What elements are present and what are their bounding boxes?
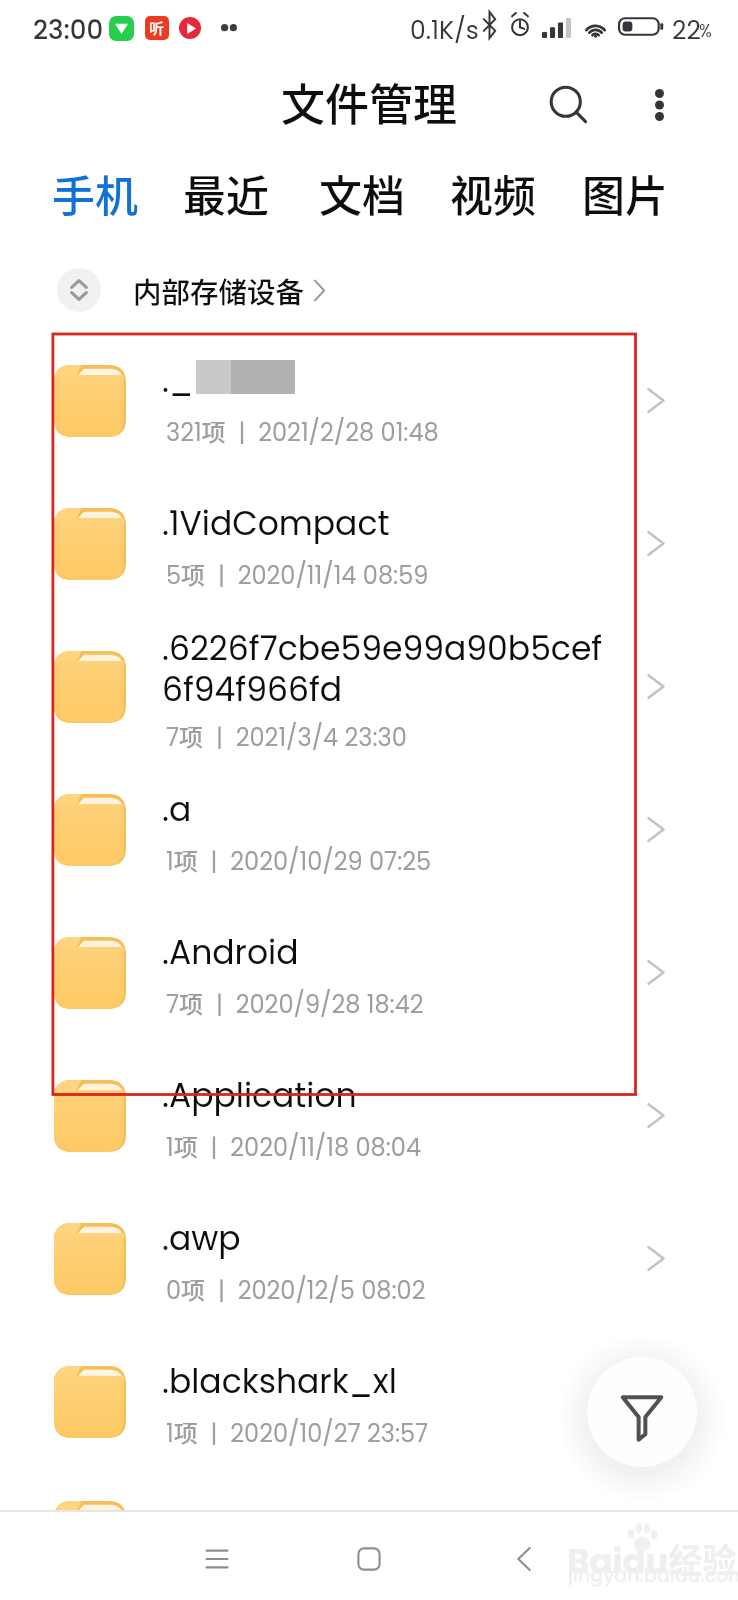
staticText: .blackshark_xl (162, 1358, 397, 1404)
staticText: 内部存储设备 (133, 270, 305, 311)
staticText: 2项 | 2020/10/2 11:04 (166, 1557, 411, 1593)
button[interactable]: Back (480, 1515, 568, 1600)
button[interactable]: .6226f7cbe59e99a90b5cef 6f94f966fd (0, 615, 738, 758)
staticText: 0项 | 2020/12/5 08:02 (166, 1271, 426, 1307)
button[interactable]: 文档 (304, 150, 420, 236)
staticText: 321项 | 2021/2/28 01:48 (166, 413, 439, 449)
staticText: 文档 (319, 162, 405, 224)
staticText: 7项 | 2020/9/28 18:42 (166, 985, 424, 1021)
staticText: 0.1K/s (410, 13, 479, 48)
button[interactable]: Home (325, 1515, 413, 1600)
staticText: 手机 (52, 162, 138, 224)
staticText: .1VidCompact (162, 500, 390, 546)
button[interactable]: ._ (0, 329, 738, 472)
button[interactable]: .Application (0, 1044, 738, 1187)
staticText: 1项 | 2020/10/29 07:25 (166, 842, 432, 878)
button[interactable]: .1VidCompact (0, 472, 738, 615)
button[interactable]: 图片 (567, 150, 683, 236)
button[interactable]: .blackshark_xl (0, 1330, 738, 1473)
staticText: % (699, 19, 712, 43)
staticText: .Application (162, 1072, 357, 1118)
button[interactable]: Search (533, 69, 605, 141)
staticText: jingyan.baidu.com (568, 1562, 738, 1589)
staticText: .6226f7cbe59e99a90b5cef 6f94f966fd (162, 625, 603, 713)
button[interactable]: 最近 (168, 150, 284, 236)
staticText: 视频 (450, 162, 536, 224)
button[interactable]: 手机 (37, 150, 153, 236)
staticText: .a (162, 786, 192, 832)
button[interactable]: .a (0, 758, 738, 901)
staticText: 7项 | 2021/3/4 23:30 (166, 718, 407, 754)
staticText: Baidu经验 (567, 1534, 737, 1585)
button[interactable]: .cache (0, 1473, 738, 1600)
staticText: 听 (149, 17, 165, 39)
staticText: .Android (162, 929, 299, 975)
button[interactable]: Filter (587, 1357, 697, 1467)
staticText: 图片 (582, 162, 668, 224)
button[interactable]: 视频 (435, 150, 551, 236)
staticText: 文件管理 (281, 70, 457, 134)
staticText: 23:00 (33, 12, 104, 48)
staticText: ._ (162, 357, 194, 403)
button[interactable]: 内部存储设备 (57, 249, 327, 331)
staticText: 22 (672, 13, 701, 48)
staticText: 1项 | 2020/11/18 08:04 (166, 1128, 421, 1164)
staticText: .cache (162, 1501, 273, 1547)
button[interactable]: .awp (0, 1187, 738, 1330)
button[interactable]: Recents (173, 1515, 261, 1600)
staticText: .awp (162, 1215, 241, 1261)
button[interactable]: More options (623, 69, 695, 141)
staticText: 1项 | 2020/10/27 23:57 (166, 1414, 429, 1450)
button[interactable]: .Android (0, 901, 738, 1044)
staticText: 最近 (183, 162, 269, 224)
staticText: 5项 | 2020/11/14 08:59 (166, 556, 429, 592)
